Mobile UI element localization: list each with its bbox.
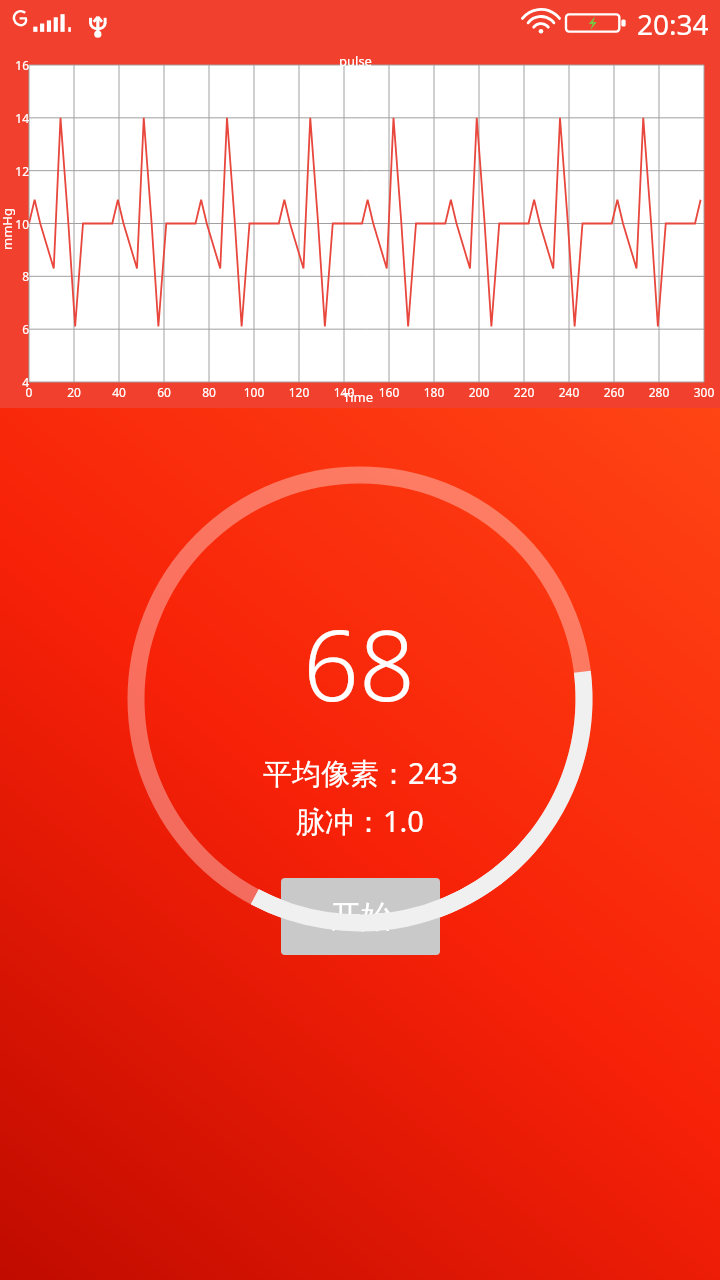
- staticText: 60: [149, 384, 179, 400]
- staticText: 0: [14, 384, 44, 400]
- staticText: 20:34: [637, 5, 709, 43]
- staticText: 260: [599, 384, 629, 400]
- staticText: 300: [689, 384, 719, 400]
- staticText: 120: [284, 384, 314, 400]
- staticText: 开始: [330, 897, 392, 936]
- staticText: 200: [464, 384, 494, 400]
- staticText: 220: [509, 384, 539, 400]
- staticText: 20: [59, 384, 89, 400]
- staticText: pulse: [339, 52, 372, 70]
- staticText: 8: [9, 268, 29, 284]
- staticText: 平均像素：243: [263, 753, 458, 793]
- staticText: 80: [194, 384, 224, 400]
- staticText: 脉冲：1.0: [296, 801, 424, 841]
- staticText: 12: [9, 163, 29, 179]
- staticText: 280: [644, 384, 674, 400]
- staticText: 100: [239, 384, 269, 400]
- button[interactable]: 开始: [281, 878, 440, 955]
- staticText: 180: [419, 384, 449, 400]
- staticText: 4: [9, 374, 29, 390]
- staticText: 240: [554, 384, 584, 400]
- staticText: Time: [343, 388, 374, 406]
- staticText: 140: [329, 384, 359, 400]
- staticText: 10: [9, 216, 29, 232]
- staticText: 16: [9, 57, 29, 73]
- staticText: 160: [374, 384, 404, 400]
- staticText: 40: [104, 384, 134, 400]
- staticText: 6: [9, 321, 29, 337]
- staticText: mmHg: [0, 208, 16, 250]
- staticText: 14: [9, 110, 29, 126]
- staticText: 68: [303, 596, 415, 729]
